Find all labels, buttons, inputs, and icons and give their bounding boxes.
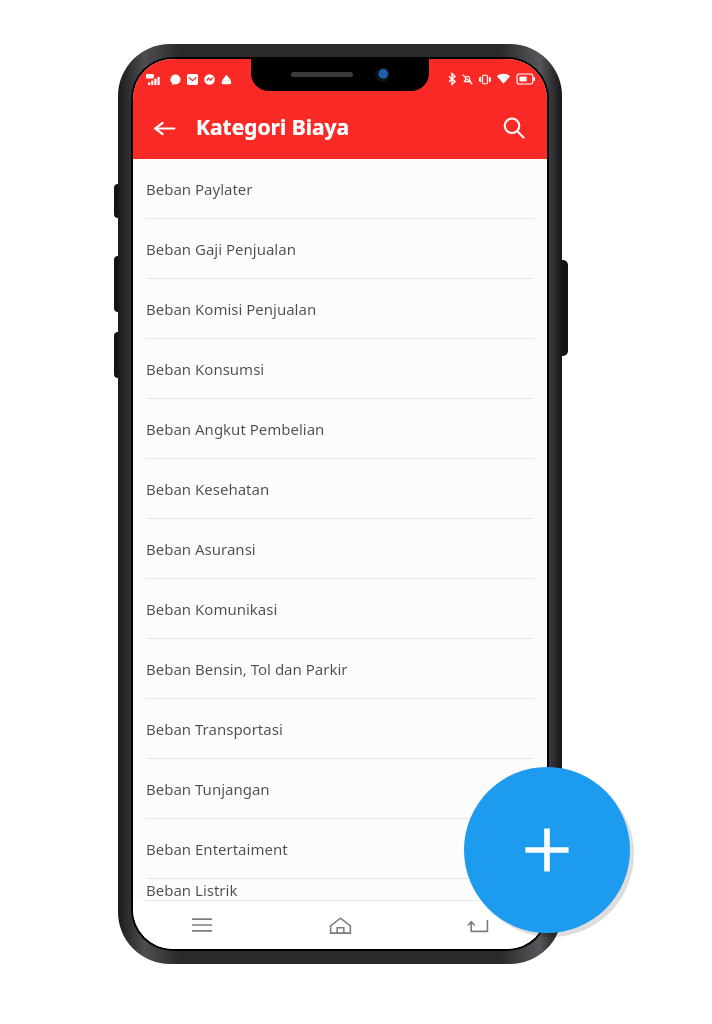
button[interactable]: Beban Entertaiment <box>133 819 547 879</box>
staticText: Beban Asuransi <box>146 539 256 559</box>
staticText: Beban Transportasi <box>146 719 283 739</box>
staticText: Beban Bensin, Tol dan Parkir <box>146 659 348 679</box>
button[interactable]: Beban Listrik <box>133 879 547 901</box>
button[interactable]: Beban Asuransi <box>133 519 547 579</box>
button[interactable]: Beban Komisi Penjualan <box>133 279 547 339</box>
button[interactable]: Tambah kategori <box>464 767 630 933</box>
staticText: Beban Angkut Pembelian <box>146 419 325 439</box>
staticText: Beban Kesehatan <box>146 479 270 499</box>
button[interactable]: Kembali <box>141 105 187 151</box>
button[interactable]: Kembali <box>446 903 510 947</box>
button[interactable]: Beban Gaji Penjualan <box>133 219 547 279</box>
staticText: Beban Paylater <box>146 179 253 199</box>
staticText: Beban Entertaiment <box>146 839 288 859</box>
button[interactable]: Beban Transportasi <box>133 699 547 759</box>
button[interactable]: Menu terbaru <box>170 903 234 947</box>
button[interactable]: Beban Bensin, Tol dan Parkir <box>133 639 547 699</box>
staticText: Beban Konsumsi <box>146 359 265 379</box>
button[interactable]: Beban Komunikasi <box>133 579 547 639</box>
staticText: Beban Komisi Penjualan <box>146 299 317 319</box>
staticText: Beban Tunjangan <box>146 779 270 799</box>
button[interactable]: Cari <box>491 105 537 151</box>
staticText: Kategori Biaya <box>196 113 350 142</box>
staticText: Beban Komunikasi <box>146 599 278 619</box>
staticText: Beban Listrik <box>146 880 238 900</box>
button[interactable]: Beban Paylater <box>133 159 547 219</box>
button[interactable]: Beranda <box>308 903 372 947</box>
button[interactable]: Beban Konsumsi <box>133 339 547 399</box>
staticText: Beban Gaji Penjualan <box>146 239 296 259</box>
button[interactable]: Beban Kesehatan <box>133 459 547 519</box>
button[interactable]: Beban Tunjangan <box>133 759 547 819</box>
button[interactable]: Beban Angkut Pembelian <box>133 399 547 459</box>
